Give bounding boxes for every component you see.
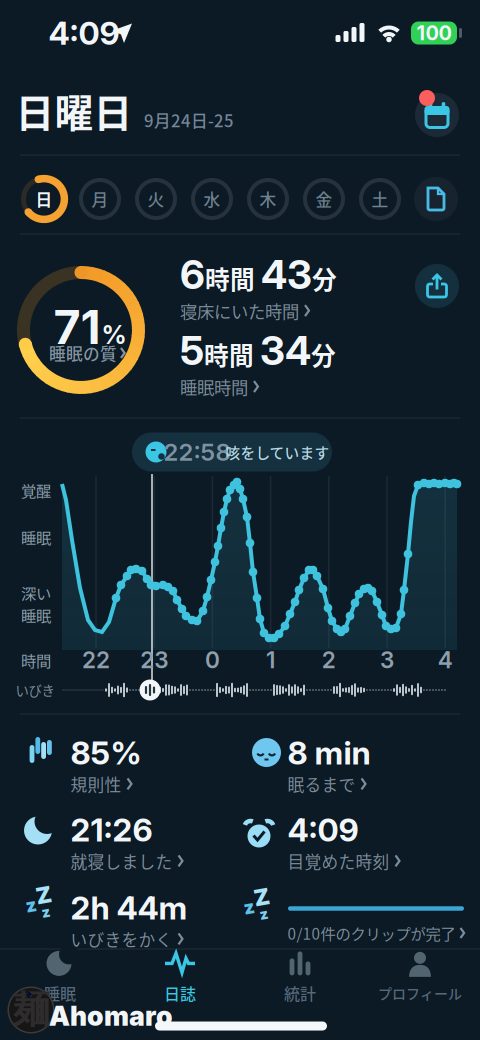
staticText: 時間: [204, 336, 260, 372]
staticText: 寝床にいた時間: [180, 298, 299, 323]
staticText: 1: [266, 647, 275, 673]
staticText: 咳をしています: [225, 441, 329, 463]
button[interactable]: 85%: [22, 726, 234, 804]
staticText: 100: [416, 21, 451, 45]
button[interactable]: 共有: [415, 264, 459, 308]
staticText: 0: [205, 647, 220, 673]
button[interactable]: 21:26: [22, 803, 234, 881]
staticText: 睡眠: [21, 526, 51, 548]
staticText: いびき: [15, 680, 54, 700]
staticText: 日誌: [164, 981, 196, 1005]
button[interactable]: 日: [20, 175, 68, 223]
button[interactable]: プロフィール: [364, 950, 476, 1004]
staticText: z: [25, 894, 36, 916]
staticText: %: [101, 320, 126, 350]
staticText: 月: [91, 187, 108, 211]
staticText: 34: [260, 327, 311, 374]
button[interactable]: 4:09: [246, 803, 458, 881]
staticText: 0/10件のクリップが完了: [287, 922, 455, 944]
staticText: 2: [322, 647, 336, 673]
button[interactable]: 睡眠メモ: [414, 177, 458, 221]
button[interactable]: 71: [11, 245, 151, 415]
staticText: 目覚めた時刻: [287, 849, 389, 873]
staticText: 統計: [284, 981, 316, 1005]
staticText: 5: [180, 327, 204, 374]
staticText: 就寝しました: [70, 849, 172, 873]
staticText: 金: [315, 187, 332, 211]
staticText: 分: [312, 260, 337, 296]
staticText: 43: [261, 251, 312, 298]
button[interactable]: 22:58: [132, 432, 332, 471]
staticText: 分: [311, 336, 336, 372]
staticText: ゛: [11, 989, 33, 1015]
staticText: 21:26: [70, 811, 152, 849]
staticText: 23: [140, 647, 168, 673]
staticText: 木: [259, 187, 276, 211]
staticText: 火: [147, 187, 164, 211]
button[interactable]: 月: [76, 175, 124, 223]
staticText: 眠るまで: [287, 772, 355, 796]
button[interactable]: 8 min: [246, 726, 458, 804]
staticText: z: [259, 905, 268, 923]
staticText: 深い: [21, 582, 51, 604]
staticText: 4: [438, 647, 453, 673]
staticText: 6: [180, 251, 205, 298]
staticText: 睡眠時間: [180, 374, 248, 399]
button[interactable]: 水: [188, 175, 236, 223]
staticText: 麺: [12, 987, 49, 1033]
staticText: 時間: [21, 649, 51, 671]
staticText: 4:09: [287, 811, 358, 849]
staticText: 71: [53, 299, 100, 355]
staticText: 3: [380, 647, 394, 673]
staticText: 日曜日: [15, 82, 132, 138]
staticText: 22:58: [163, 438, 230, 466]
button[interactable]: カレンダー: [409, 85, 465, 141]
staticText: プロフィール: [378, 983, 462, 1003]
button[interactable]: 火: [132, 175, 180, 223]
button[interactable]: 木: [244, 175, 292, 223]
staticText: z: [41, 903, 50, 921]
staticText: Ahomaro: [49, 1000, 173, 1032]
button[interactable]: Z: [246, 873, 470, 943]
staticText: z: [243, 896, 254, 918]
staticText: 4:09: [48, 14, 119, 52]
staticText: 規則性: [70, 772, 121, 796]
button[interactable]: 日誌: [124, 950, 236, 1004]
staticText: 85%: [70, 734, 141, 772]
button[interactable]: 土: [356, 175, 404, 223]
staticText: 9月24日-25: [144, 108, 234, 132]
staticText: いびきをかく: [70, 927, 172, 951]
staticText: 睡眠: [21, 604, 51, 626]
staticText: Z: [254, 884, 270, 910]
staticText: 22: [82, 647, 110, 673]
staticText: 覚醒: [21, 479, 51, 501]
button[interactable]: 6: [180, 251, 337, 323]
button[interactable]: 金: [300, 175, 348, 223]
staticText: 水: [203, 187, 220, 211]
staticText: 2h 44m: [70, 889, 187, 927]
staticText: 睡眠: [44, 981, 76, 1005]
button[interactable]: Z: [22, 881, 234, 959]
staticText: 時間: [205, 260, 261, 296]
staticText: 睡眠の質: [49, 341, 117, 365]
staticText: 土: [371, 187, 388, 211]
button[interactable]: 統計: [244, 950, 356, 1004]
button[interactable]: 5: [180, 327, 336, 399]
staticText: 8 min: [287, 734, 370, 772]
staticText: 日: [35, 187, 52, 211]
button[interactable]: 睡眠: [4, 950, 116, 1004]
staticText: Z: [36, 882, 52, 908]
